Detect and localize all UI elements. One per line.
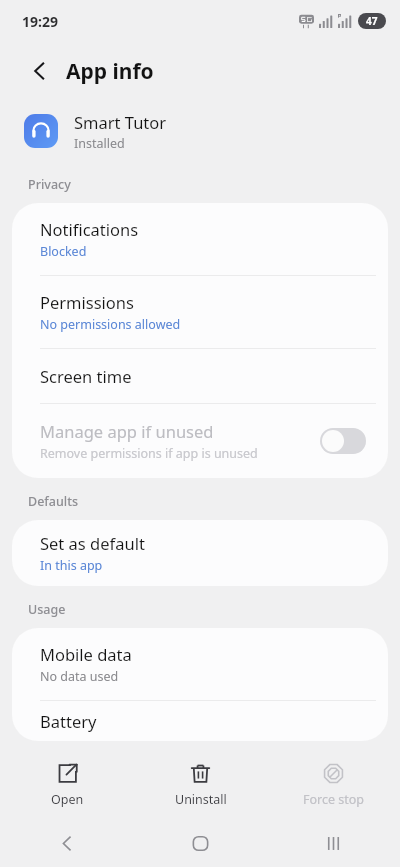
staticText: Usage	[28, 601, 66, 618]
staticText: Installed	[74, 135, 125, 152]
button[interactable]: Battery	[12, 701, 388, 741]
staticText: 19:29	[22, 12, 58, 31]
staticText: Battery	[40, 710, 97, 732]
staticText: Smart Tutor	[74, 111, 167, 133]
button[interactable]: Open	[0, 751, 134, 819]
button[interactable]: Mobile data	[12, 628, 388, 700]
button[interactable]: Back	[0, 819, 134, 867]
staticText: App info	[66, 57, 154, 86]
button[interactable]: Notifications	[12, 203, 388, 275]
staticText: No data used	[40, 668, 119, 685]
button[interactable]: Screen time	[12, 349, 388, 403]
staticText: Privacy	[28, 176, 71, 193]
button[interactable]: Permissions	[12, 276, 388, 348]
staticText: Set as default	[40, 532, 145, 554]
button[interactable]: Force stop	[267, 751, 400, 819]
staticText: Force stop	[303, 791, 365, 808]
button[interactable]: Manage app if unused	[12, 404, 388, 478]
button[interactable]: Set as default	[12, 520, 388, 586]
staticText: Remove permissions if app is unused	[40, 445, 258, 462]
staticText: Open	[51, 791, 84, 808]
button[interactable]: Uninstall	[134, 751, 267, 819]
button[interactable]: Back	[20, 51, 60, 91]
staticText: Uninstall	[175, 791, 227, 808]
staticText: Manage app if unused	[40, 420, 214, 442]
button[interactable]: Recents	[267, 819, 400, 867]
button[interactable]: Home	[134, 819, 267, 867]
staticText: No permissions allowed	[40, 316, 181, 333]
staticText: 47	[366, 14, 378, 28]
staticText: In this app	[40, 557, 103, 574]
staticText: Mobile data	[40, 643, 132, 665]
staticText: Permissions	[40, 291, 134, 313]
staticText: Screen time	[40, 365, 132, 387]
staticText: Defaults	[28, 493, 79, 510]
staticText: Blocked	[40, 243, 87, 260]
staticText: Notifications	[40, 218, 139, 240]
